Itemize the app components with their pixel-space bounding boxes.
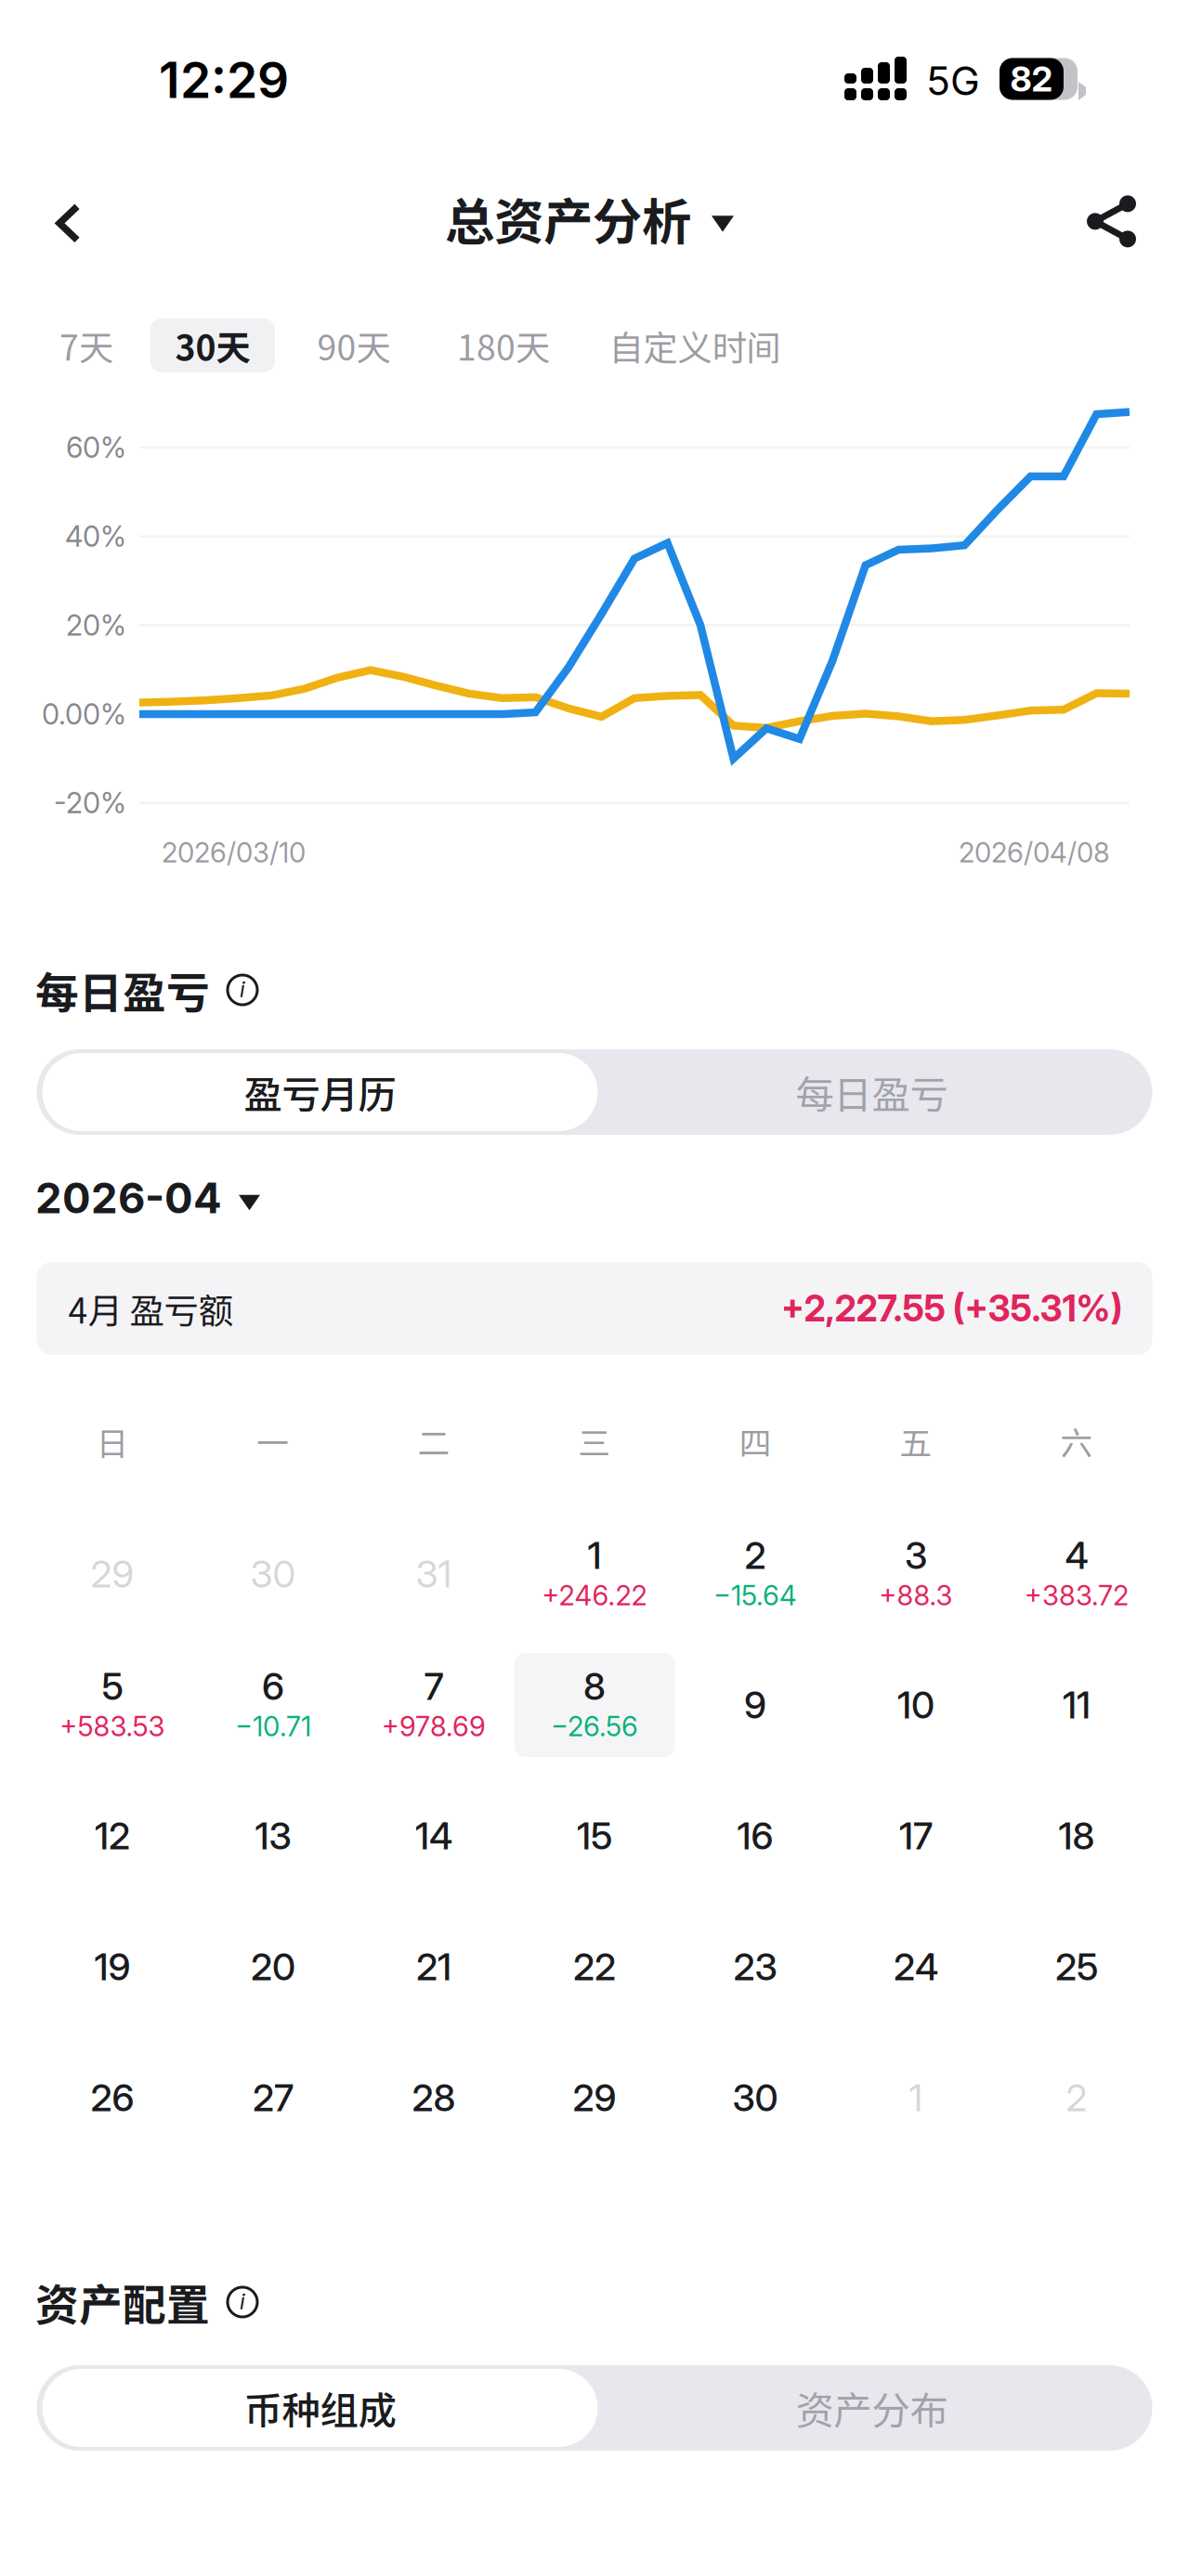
staticText: 总资产分析 xyxy=(445,182,691,254)
staticText: 12:29 xyxy=(159,50,289,110)
staticText: +583.53 xyxy=(60,1710,165,1743)
button[interactable]: 25 xyxy=(996,1915,1157,2019)
staticText: 30天 xyxy=(175,320,250,371)
button[interactable]: 5 xyxy=(32,1653,193,1757)
button[interactable]: 1 xyxy=(836,2046,996,2150)
button[interactable]: 27 xyxy=(193,2046,353,2150)
staticText: 19 xyxy=(94,1944,131,1989)
staticText: 27 xyxy=(253,2075,294,2120)
staticText: 180天 xyxy=(457,320,550,371)
button[interactable]: 12 xyxy=(32,1784,193,1888)
staticText: 16 xyxy=(737,1813,773,1858)
button[interactable]: 盈亏月历 xyxy=(42,1053,598,1131)
button[interactable]: 13 xyxy=(193,1784,353,1888)
button[interactable]: 总资产分析 xyxy=(434,166,745,271)
button[interactable]: 20 xyxy=(193,1915,353,2019)
button[interactable]: 11 xyxy=(996,1653,1157,1757)
staticText: 31 xyxy=(416,1552,452,1596)
button[interactable]: 31 xyxy=(353,1522,514,1626)
staticText: 9 xyxy=(744,1682,766,1727)
staticText: 90天 xyxy=(317,320,391,371)
staticText: 5G xyxy=(926,57,980,105)
button[interactable]: Share xyxy=(1058,172,1166,271)
button[interactable]: 26 xyxy=(32,2046,193,2150)
button[interactable]: 2026-04 xyxy=(0,1172,1189,1224)
button[interactable]: 17 xyxy=(836,1784,996,1888)
staticText: 22 xyxy=(573,1944,616,1989)
staticText: 17 xyxy=(899,1813,933,1858)
button[interactable]: 180天 xyxy=(443,319,564,372)
staticText: 2026-04 xyxy=(35,1172,222,1223)
staticText: 8 xyxy=(583,1664,606,1709)
button[interactable]: 2 xyxy=(675,1522,836,1626)
staticText: +978.69 xyxy=(382,1710,486,1743)
button[interactable]: 30 xyxy=(675,2046,836,2150)
staticText: 二 xyxy=(418,1418,450,1465)
staticText: 15 xyxy=(577,1813,612,1858)
button[interactable]: 21 xyxy=(353,1915,514,2019)
button[interactable]: 7 xyxy=(353,1653,514,1757)
staticText: 日 xyxy=(96,1418,129,1465)
button[interactable]: 29 xyxy=(32,1522,193,1626)
button[interactable]: 30天 xyxy=(150,319,275,372)
button[interactable]: 资产分布 xyxy=(594,2369,1150,2447)
staticText: 2026/03/10 xyxy=(162,836,306,869)
staticText: 0.00% xyxy=(42,697,126,731)
staticText: i xyxy=(240,976,245,1002)
staticText: 1 xyxy=(588,1533,601,1578)
button[interactable]: 8 xyxy=(514,1653,675,1757)
staticText: 26 xyxy=(91,2075,134,2120)
staticText: 20 xyxy=(251,1944,295,1989)
staticText: 4月 盈亏额 xyxy=(68,1283,233,1334)
button[interactable]: 18 xyxy=(996,1784,1157,1888)
button[interactable]: Back xyxy=(28,174,109,272)
button[interactable]: 4 xyxy=(996,1522,1157,1626)
staticText: −26.56 xyxy=(551,1710,638,1743)
staticText: 六 xyxy=(1060,1418,1093,1465)
button[interactable]: 24 xyxy=(836,1915,996,2019)
button[interactable]: 2 xyxy=(996,2046,1157,2150)
staticText: 30 xyxy=(732,2075,778,2120)
staticText: 五 xyxy=(900,1418,932,1465)
button[interactable]: 9 xyxy=(675,1653,836,1757)
staticText: 7 xyxy=(424,1664,444,1709)
staticText: +383.72 xyxy=(1025,1579,1129,1612)
button[interactable]: 币种组成 xyxy=(42,2369,598,2447)
staticText: 23 xyxy=(733,1944,777,1989)
button[interactable]: 6 xyxy=(193,1653,353,1757)
button[interactable]: 14 xyxy=(353,1784,514,1888)
staticText: −15.64 xyxy=(713,1579,797,1612)
button[interactable]: 15 xyxy=(514,1784,675,1888)
staticText: 20% xyxy=(66,608,126,642)
staticText: 5 xyxy=(102,1664,123,1709)
staticText: 每日盈亏 xyxy=(35,959,210,1021)
button[interactable]: 28 xyxy=(353,2046,514,2150)
staticText: 13 xyxy=(255,1813,291,1858)
button[interactable]: 23 xyxy=(675,1915,836,2019)
staticText: 币种组成 xyxy=(244,2380,396,2436)
button[interactable]: 7天 xyxy=(40,319,133,372)
staticText: 资产分布 xyxy=(796,2380,948,2436)
button[interactable]: 3 xyxy=(836,1522,996,1626)
staticText: −10.71 xyxy=(235,1710,311,1743)
button[interactable]: 90天 xyxy=(303,319,405,372)
button[interactable]: 19 xyxy=(32,1915,193,2019)
staticText: 25 xyxy=(1055,1944,1098,1989)
staticText: 28 xyxy=(412,2075,456,2120)
button[interactable]: 16 xyxy=(675,1784,836,1888)
button[interactable]: 22 xyxy=(514,1915,675,2019)
staticText: 3 xyxy=(905,1533,927,1578)
button[interactable]: 10 xyxy=(836,1653,996,1757)
button[interactable]: 29 xyxy=(514,2046,675,2150)
staticText: 24 xyxy=(894,1944,938,1989)
button[interactable]: 每日盈亏 xyxy=(594,1053,1150,1131)
staticText: 21 xyxy=(416,1944,451,1989)
staticText: 29 xyxy=(91,1552,134,1596)
button[interactable]: 自定义时间 xyxy=(604,319,786,372)
button[interactable]: 1 xyxy=(514,1522,675,1626)
staticText: 7天 xyxy=(59,320,113,371)
staticText: 60% xyxy=(66,430,126,465)
button[interactable]: 30 xyxy=(193,1522,353,1626)
staticText: 11 xyxy=(1063,1682,1091,1727)
staticText: 40% xyxy=(65,519,126,554)
